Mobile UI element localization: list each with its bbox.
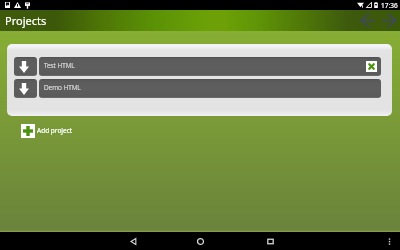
staticText: Test HTML (44, 61, 75, 70)
staticText: Add project (37, 126, 73, 135)
staticText: 17:36 (381, 1, 398, 10)
button[interactable]: Recents (261, 232, 279, 250)
button[interactable]: Reorder Test HTML (14, 57, 37, 76)
button[interactable]: Remove project (366, 61, 377, 72)
staticText: Demo HTML (44, 83, 81, 92)
button[interactable]: Test HTML (39, 57, 381, 76)
button[interactable]: Back (356, 10, 378, 31)
button[interactable]: Forward (378, 10, 400, 31)
button[interactable]: Reorder Demo HTML (14, 79, 37, 98)
button[interactable]: Back (124, 232, 142, 250)
button[interactable]: More options (380, 232, 398, 250)
button[interactable]: Home (191, 232, 209, 250)
button[interactable]: Demo HTML (39, 79, 381, 98)
button[interactable]: Add project (21, 124, 73, 138)
staticText: Projects (5, 13, 47, 28)
